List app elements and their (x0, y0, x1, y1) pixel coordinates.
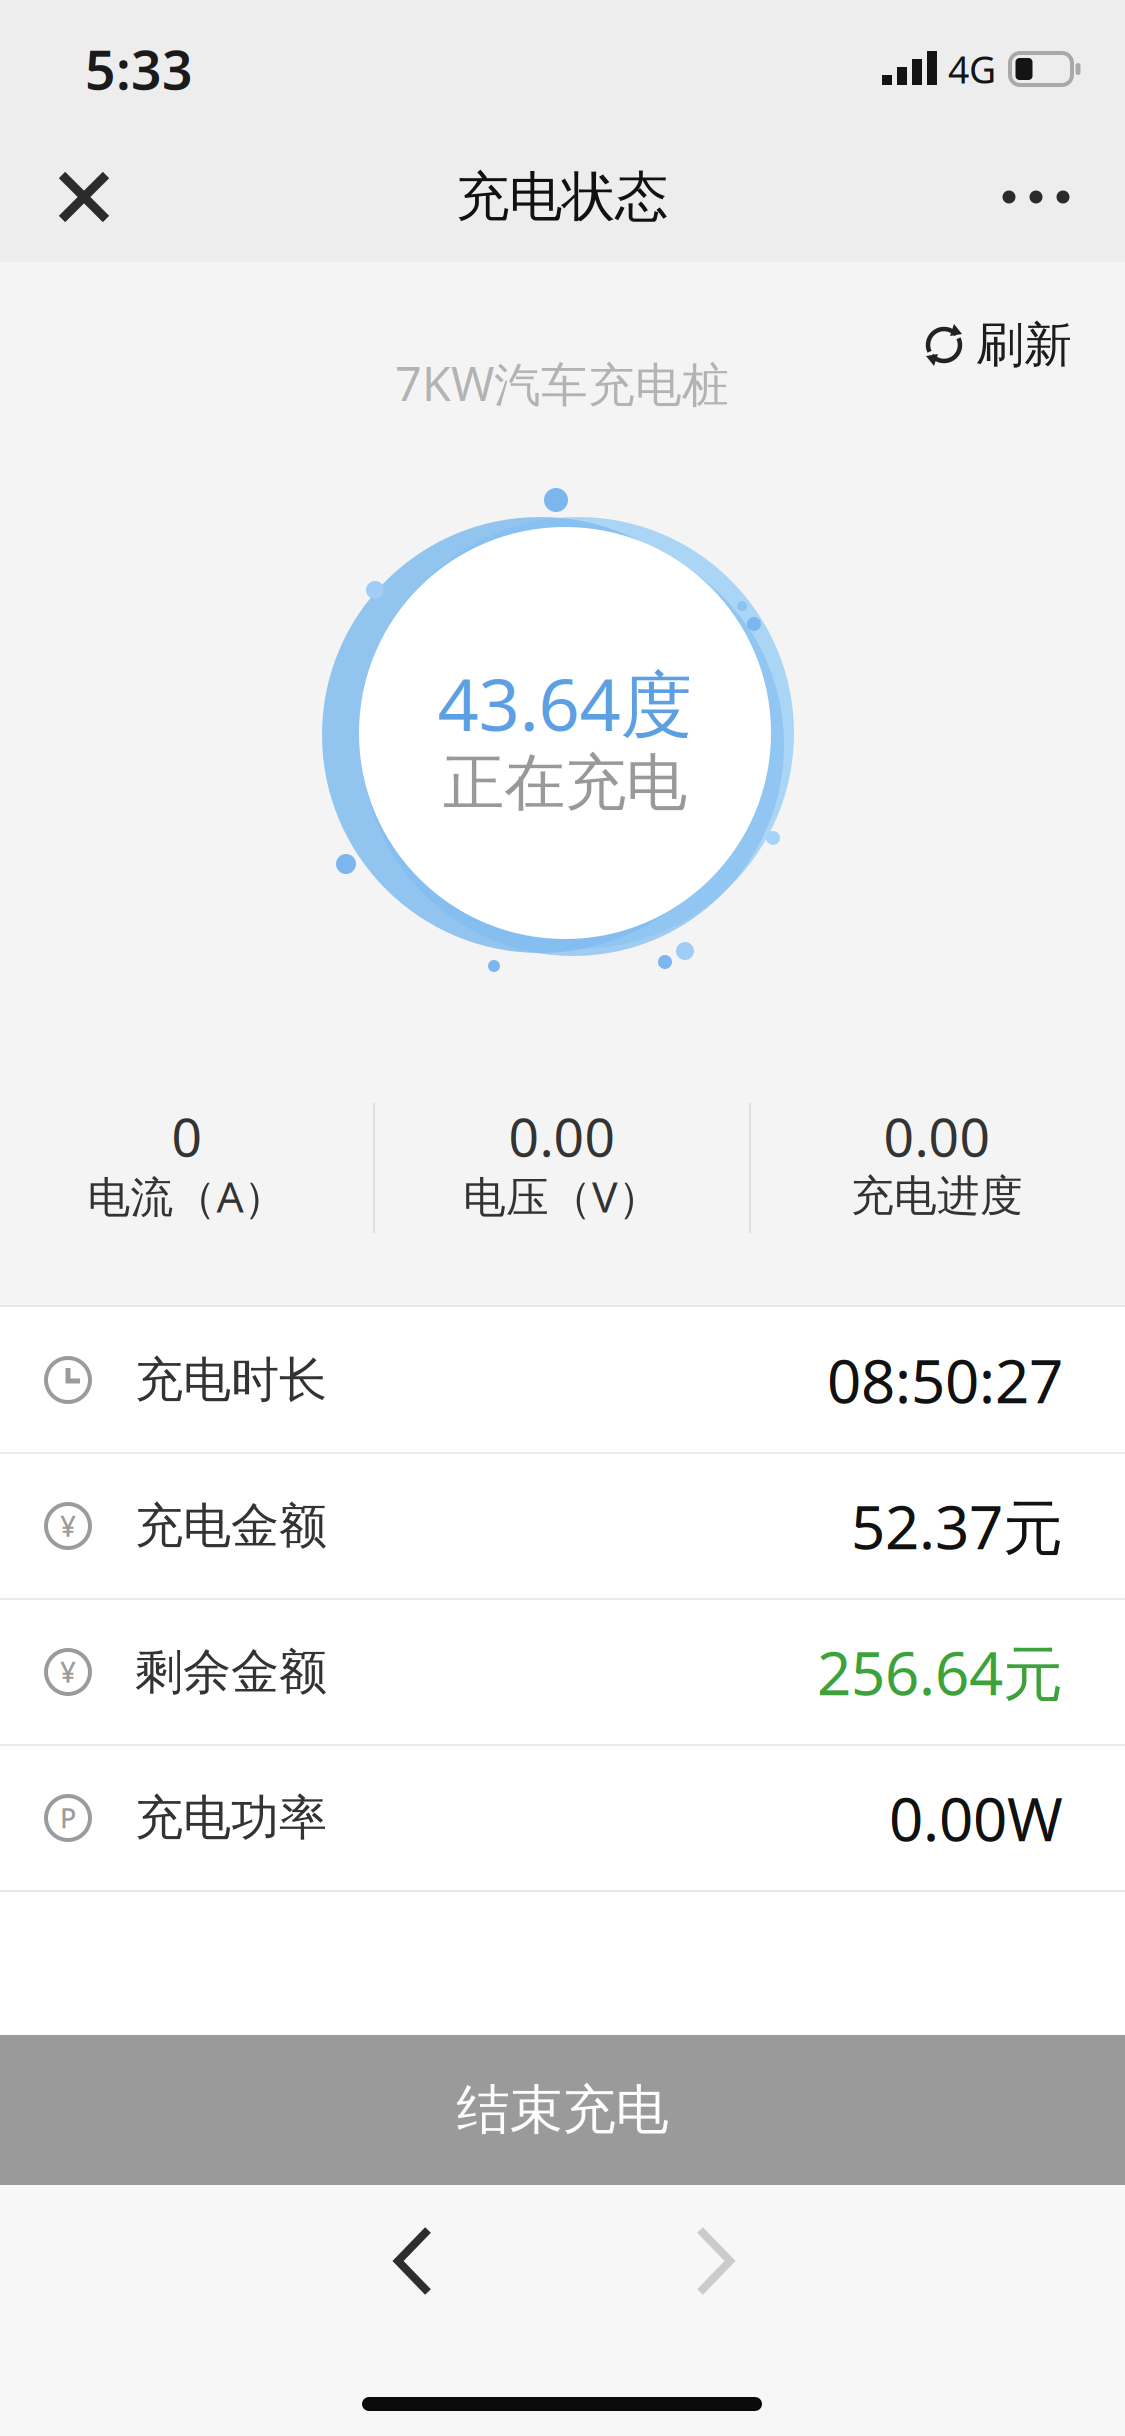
button[interactable]: Previous (381, 2216, 471, 2306)
button[interactable]: More (981, 153, 1091, 241)
staticText: 0.00W (889, 1778, 1063, 1858)
staticText: 剩余金额 (135, 1642, 327, 1701)
button[interactable]: Close (40, 153, 128, 241)
staticText: 刷新 (976, 315, 1072, 374)
staticText: 充电功率 (135, 1788, 327, 1847)
staticText: 0 (171, 1101, 202, 1171)
staticText: 5:33 (85, 34, 193, 104)
button[interactable]: 刷新 (922, 315, 1072, 374)
staticText: 0.00 (883, 1101, 990, 1171)
staticText: 0.00 (508, 1101, 615, 1171)
staticText: 充电状态 (456, 164, 668, 230)
staticText: ¥ (60, 1653, 76, 1691)
staticText: 4G (948, 44, 996, 94)
staticText: 52.37元 (851, 1486, 1063, 1566)
staticText: 7KW汽车充电桩 (395, 352, 729, 414)
staticText: 43.64度 (437, 655, 692, 751)
staticText: 电压（V） (463, 1168, 661, 1224)
staticText: 电流（A） (87, 1168, 286, 1224)
button[interactable]: Next (657, 2216, 747, 2306)
staticText: 充电进度 (851, 1170, 1023, 1222)
staticText: 充电时长 (135, 1350, 327, 1409)
staticText: 充电金额 (135, 1496, 327, 1555)
staticText: 结束充电 (456, 2077, 668, 2143)
staticText: 256.64元 (817, 1632, 1063, 1712)
staticText: 08:50:27 (827, 1340, 1063, 1420)
staticText: 正在充电 (443, 745, 687, 821)
button[interactable]: 结束充电 (0, 2035, 1125, 2185)
staticText: ¥ (60, 1507, 76, 1545)
staticText: P (60, 1800, 76, 1836)
